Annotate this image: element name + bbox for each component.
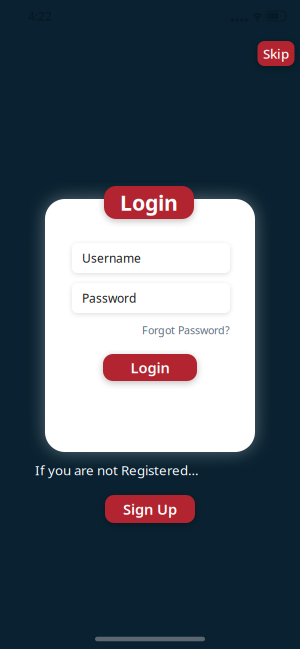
button[interactable]: Skip [257,41,294,66]
button[interactable]: Login [103,354,197,381]
staticText: Username [82,250,141,266]
staticText: If you are not Registered… [35,461,199,479]
staticText: 4:22 [28,8,52,24]
staticText: Password [82,290,136,306]
button[interactable]: Username [72,243,230,273]
staticText: Login [130,358,169,377]
staticText: Forgot Password? [142,323,230,337]
staticText: Login [120,188,178,217]
staticText: Skip [263,45,289,62]
button[interactable]: Sign Up [105,495,195,523]
button[interactable]: Forgot Password? [142,323,230,337]
staticText: Sign Up [123,499,177,519]
button[interactable]: Password [72,283,230,313]
